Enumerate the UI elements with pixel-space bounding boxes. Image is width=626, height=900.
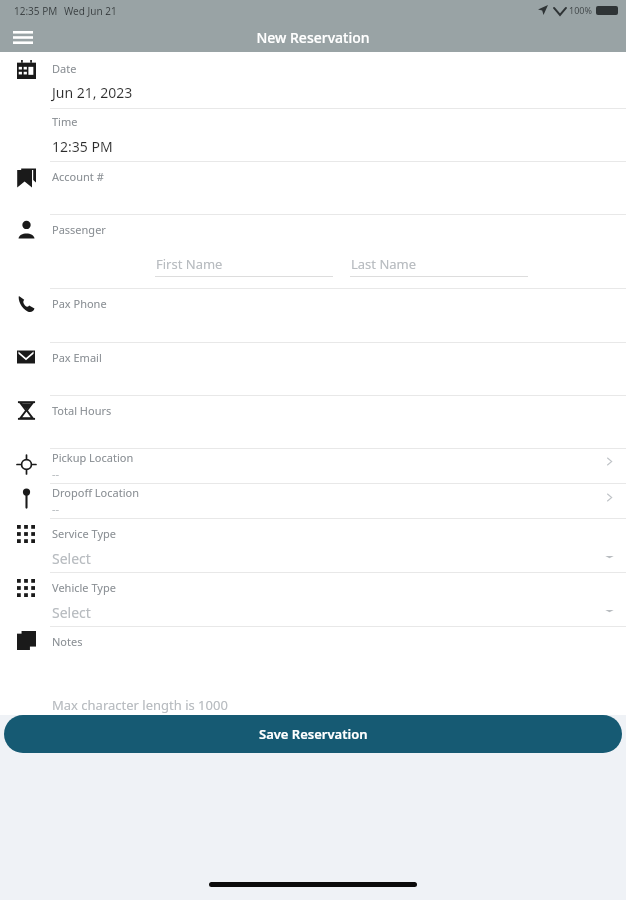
staticText: Notes	[52, 634, 83, 649]
staticText: Last Name	[351, 255, 417, 273]
other: Dropoff location	[17, 489, 36, 508]
other: Account	[16, 168, 36, 188]
button[interactable]	[0, 483, 626, 518]
button[interactable]: Menu	[0, 22, 46, 52]
staticText: First Name	[156, 255, 223, 273]
staticText: --	[52, 466, 60, 481]
other: Service type	[17, 525, 35, 543]
staticText: Select	[52, 549, 91, 568]
staticText: Select	[52, 603, 91, 622]
staticText: Pickup Location	[52, 450, 134, 465]
staticText: Wed Jun 21	[64, 4, 117, 18]
other: Email	[17, 348, 35, 366]
staticText: Time	[52, 114, 78, 129]
staticText: Total Hours	[52, 403, 112, 418]
button[interactable]	[0, 518, 626, 572]
button[interactable]: Save Reservation	[4, 715, 622, 753]
other: Date	[17, 60, 36, 79]
staticText: 12:35 PM	[14, 4, 58, 18]
other: Pickup location	[17, 455, 36, 474]
other: Vehicle type	[17, 579, 35, 597]
staticText: Vehicle Type	[52, 580, 116, 595]
other: Passenger	[17, 220, 36, 239]
staticText: Save Reservation	[259, 725, 368, 743]
staticText: 100%	[569, 4, 592, 16]
other: Hours	[17, 401, 36, 420]
staticText: Account #	[52, 169, 104, 184]
staticText: Date	[52, 61, 77, 76]
button[interactable]	[0, 448, 626, 483]
staticText: 12:35 PM	[52, 137, 113, 156]
staticText: --	[52, 501, 60, 516]
staticText: Pax Email	[52, 350, 102, 365]
staticText: Jun 21, 2023	[52, 83, 133, 102]
other: Notes	[17, 631, 36, 650]
button[interactable]	[0, 572, 626, 626]
staticText: New Reservation	[256, 28, 370, 47]
staticText: Dropoff Location	[52, 485, 139, 500]
staticText: Service Type	[52, 526, 117, 541]
staticText: Pax Phone	[52, 296, 107, 311]
staticText: Max character length is 1000	[52, 696, 228, 714]
other: Phone	[17, 294, 36, 313]
staticText: Passenger	[52, 222, 106, 237]
